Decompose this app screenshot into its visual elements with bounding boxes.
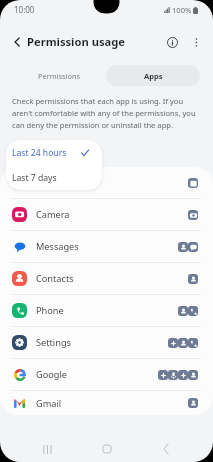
button[interactable]: Settings xyxy=(0,327,213,358)
button[interactable]: Calendar xyxy=(0,167,213,198)
button[interactable]: Messages xyxy=(0,231,213,262)
staticText: Permissions xyxy=(38,71,81,81)
staticText: Messages xyxy=(36,240,79,253)
button[interactable]: Back xyxy=(154,437,178,461)
staticText: Apps xyxy=(144,71,163,81)
staticText: Settings xyxy=(36,336,71,349)
staticText: Calendar xyxy=(36,176,75,189)
button[interactable]: Navigate up xyxy=(7,32,27,52)
staticText: Last 24 hours xyxy=(12,147,67,159)
staticText: Check permissions that each app is using… xyxy=(12,96,203,130)
staticText: 10:00 xyxy=(14,4,35,15)
button[interactable]: Home xyxy=(95,437,119,461)
staticText: Gmail xyxy=(36,397,62,410)
staticText: Permission usage xyxy=(27,34,125,49)
staticText: Last 7 days xyxy=(12,172,57,184)
button[interactable]: More options xyxy=(186,32,206,52)
button[interactable]: Phone xyxy=(0,295,213,326)
button[interactable]: Apps xyxy=(106,65,200,86)
button[interactable]: Camera xyxy=(0,199,213,230)
button[interactable]: Recent apps xyxy=(35,437,59,461)
button[interactable]: Last 7 days xyxy=(6,165,102,190)
button[interactable]: Contacts xyxy=(0,263,213,294)
button[interactable]: Info xyxy=(162,32,182,52)
button[interactable]: Google xyxy=(0,359,213,390)
button[interactable]: Permissions xyxy=(12,65,106,86)
staticText: 100% xyxy=(172,5,192,15)
staticText: Google xyxy=(36,368,68,381)
button[interactable]: Last 24 hours xyxy=(6,140,102,165)
staticText: Phone xyxy=(36,304,64,317)
staticText: Camera xyxy=(36,208,70,221)
staticText: Contacts xyxy=(36,272,74,285)
button[interactable]: Gmail xyxy=(0,391,213,415)
